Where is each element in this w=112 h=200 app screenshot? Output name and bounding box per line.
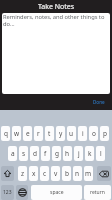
staticText: d xyxy=(33,149,37,158)
button[interactable]: Done xyxy=(91,98,107,106)
button[interactable]: d xyxy=(30,146,39,161)
button[interactable]: s xyxy=(19,146,28,161)
staticText: o xyxy=(92,129,96,138)
button[interactable]: v xyxy=(51,166,60,181)
staticText: h xyxy=(65,149,70,158)
staticText: u xyxy=(69,129,74,138)
button[interactable]: t xyxy=(45,126,54,141)
button[interactable]: Emoji keyboard xyxy=(16,185,28,200)
button[interactable]: z xyxy=(18,166,27,181)
staticText: Reminders, notes, and other things to do… xyxy=(3,13,109,28)
button[interactable]: u xyxy=(67,126,76,141)
staticText: Take Notes xyxy=(38,2,75,12)
staticText: n xyxy=(75,169,80,178)
staticText: g xyxy=(55,149,59,158)
button[interactable]: b xyxy=(62,166,71,181)
staticText: k xyxy=(88,149,92,158)
button[interactable]: e xyxy=(23,126,32,141)
button[interactable]: Shift xyxy=(1,166,14,181)
button[interactable]: w xyxy=(12,126,21,141)
button[interactable]: h xyxy=(63,146,72,161)
staticText: q xyxy=(4,129,8,138)
staticText: y xyxy=(59,129,63,138)
button[interactable]: Backspace xyxy=(97,166,111,181)
staticText: x xyxy=(32,169,36,178)
button[interactable]: q xyxy=(1,126,10,141)
button[interactable]: m xyxy=(84,166,93,181)
staticText: space xyxy=(50,189,64,196)
button[interactable]: i xyxy=(78,126,87,141)
button[interactable]: n xyxy=(73,166,82,181)
button[interactable]: j xyxy=(74,146,83,161)
button[interactable]: l xyxy=(96,146,105,161)
staticText: f xyxy=(44,149,47,158)
staticText: r xyxy=(37,129,40,138)
button[interactable]: k xyxy=(85,146,94,161)
button[interactable]: Reminders, notes, and other things to do… xyxy=(2,13,110,94)
staticText: t xyxy=(48,129,51,138)
staticText: c xyxy=(43,169,47,178)
staticText: j xyxy=(78,149,80,158)
button[interactable]: c xyxy=(40,166,49,181)
staticText: Done xyxy=(93,99,105,105)
staticText: b xyxy=(65,169,69,178)
staticText: m xyxy=(85,169,92,178)
staticText: w xyxy=(14,129,20,138)
button[interactable]: g xyxy=(52,146,61,161)
button[interactable]: x xyxy=(29,166,38,181)
staticText: v xyxy=(54,169,58,178)
button[interactable]: o xyxy=(89,126,98,141)
staticText: e xyxy=(26,129,30,138)
button[interactable]: return xyxy=(84,185,111,200)
button[interactable]: r xyxy=(34,126,43,141)
button[interactable]: f xyxy=(41,146,50,161)
button[interactable]: 123 xyxy=(1,185,14,200)
button[interactable]: y xyxy=(56,126,65,141)
staticText: p xyxy=(103,129,107,138)
button[interactable]: p xyxy=(100,126,109,141)
staticText: 123 xyxy=(3,189,12,196)
staticText: i xyxy=(82,129,84,138)
button[interactable]: a xyxy=(8,146,17,161)
staticText: s xyxy=(22,149,26,158)
button[interactable]: space xyxy=(31,185,82,200)
staticText: a xyxy=(11,149,15,158)
staticText: return xyxy=(90,189,105,196)
staticText: l xyxy=(100,149,102,158)
staticText: z xyxy=(21,169,25,178)
